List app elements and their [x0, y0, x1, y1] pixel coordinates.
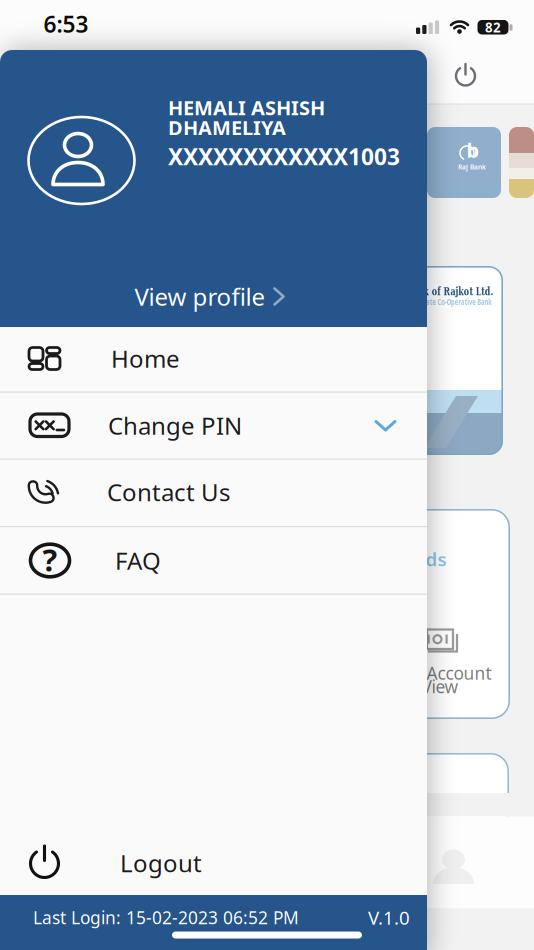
staticText: 6:53	[43, 9, 88, 39]
button[interactable]: Change PIN	[0, 392, 427, 458]
button[interactable]: Account View	[398, 623, 518, 699]
button[interactable]: ?	[0, 527, 427, 593]
staticText: View profile	[134, 281, 265, 312]
staticText: Contact Us	[107, 476, 230, 508]
staticText: 82	[485, 18, 501, 36]
staticText: Account	[426, 661, 491, 684]
button[interactable]: Contact Us	[0, 459, 427, 525]
button[interactable]: Logout	[0, 831, 427, 893]
staticText: V.1.0	[368, 905, 410, 930]
staticText: FAQ	[115, 545, 161, 576]
button[interactable]: Logout	[443, 52, 487, 96]
button[interactable]: Home	[0, 325, 427, 391]
staticText: ?	[42, 539, 57, 580]
staticText: The State Co-Operative Bank	[383, 295, 517, 308]
staticText: HEMALI ASHISH	[168, 94, 325, 121]
staticText: View	[421, 675, 458, 698]
staticText: Funds	[391, 547, 446, 571]
button[interactable]: View profile	[100, 274, 320, 318]
staticText: DHAMELIYA	[168, 114, 286, 141]
staticText: b	[466, 137, 479, 163]
staticText: Home	[111, 343, 180, 374]
staticText: XXXXXXXXXXXX1003	[168, 141, 400, 171]
staticText: Raj Bank	[458, 163, 486, 171]
staticText: Bank of Rajkot Ltd.	[387, 285, 512, 298]
staticText: Change PIN	[108, 410, 242, 441]
staticText: Logout	[120, 847, 202, 879]
staticText: Last Login: 15-02-2023 06:52 PM	[33, 906, 299, 929]
